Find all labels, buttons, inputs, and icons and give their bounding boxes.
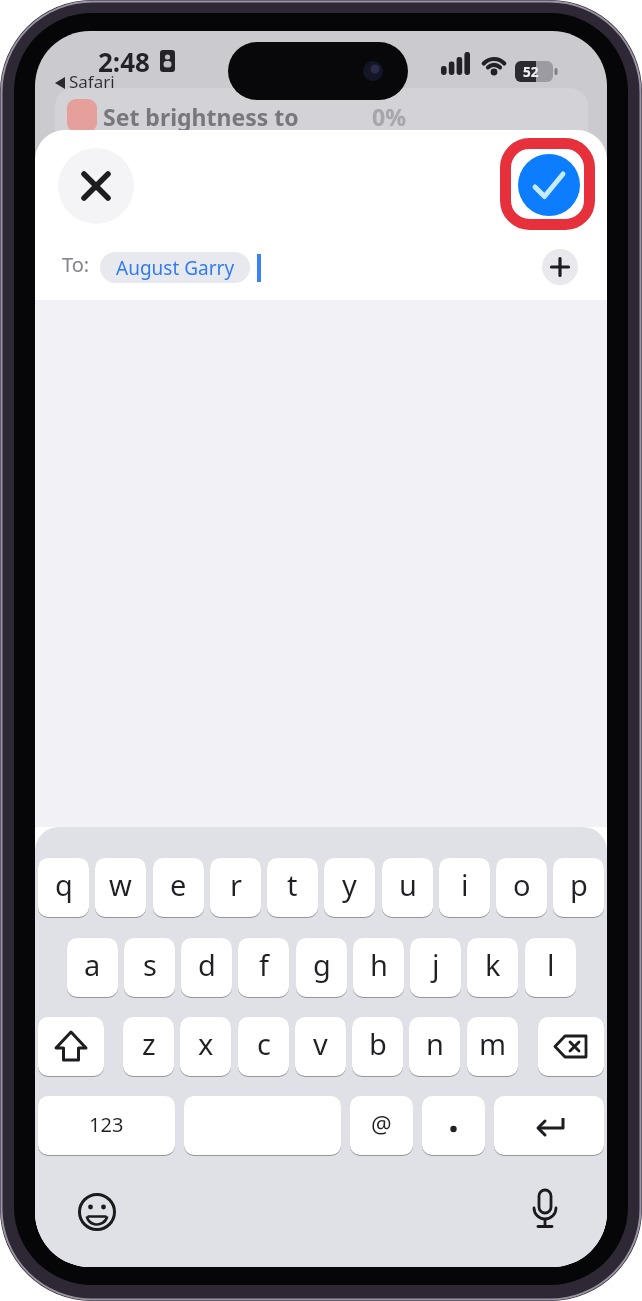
button[interactable]: @ <box>350 1096 413 1155</box>
button[interactable]: b <box>352 1017 403 1076</box>
button[interactable]: j <box>410 938 461 997</box>
button[interactable]: v <box>295 1017 346 1076</box>
staticText: r <box>230 865 242 904</box>
button[interactable]: h <box>353 938 404 997</box>
staticText: v <box>313 1024 328 1063</box>
staticText: Set brightness to <box>103 101 299 132</box>
button[interactable]: z <box>123 1017 174 1076</box>
button[interactable]: q <box>38 858 89 917</box>
button[interactable]: m <box>467 1017 518 1076</box>
button[interactable]: e <box>153 858 204 917</box>
button[interactable]: p <box>553 858 604 917</box>
button[interactable]: i <box>439 858 490 917</box>
staticText: @ <box>371 1108 392 1139</box>
staticText: o <box>513 865 531 904</box>
staticText: To: <box>62 251 90 278</box>
button[interactable]: w <box>95 858 146 917</box>
staticText: August Garry <box>116 255 235 281</box>
staticText: y <box>342 865 357 904</box>
staticText: w <box>109 865 132 904</box>
staticText: b <box>369 1024 387 1063</box>
staticText: Safari <box>69 70 115 93</box>
staticText: d <box>198 945 216 984</box>
button[interactable]: x <box>180 1017 231 1076</box>
staticText: x <box>198 1024 214 1063</box>
button[interactable]: a <box>67 938 118 997</box>
button[interactable] <box>184 1096 341 1155</box>
button[interactable]: o <box>496 858 547 917</box>
button[interactable] <box>518 154 580 216</box>
button[interactable] <box>527 1187 563 1235</box>
button[interactable] <box>38 1017 104 1076</box>
button[interactable]: d <box>181 938 232 997</box>
button[interactable] <box>494 1096 604 1155</box>
button[interactable]: g <box>296 938 347 997</box>
button[interactable]: t <box>267 858 318 917</box>
staticText: m <box>479 1024 507 1063</box>
staticText: 0% <box>372 101 406 132</box>
button[interactable] <box>538 1017 604 1076</box>
button[interactable]: r <box>210 858 261 917</box>
button[interactable] <box>77 1192 117 1232</box>
staticText: g <box>313 945 331 984</box>
button[interactable] <box>422 1096 485 1155</box>
staticText: 123 <box>89 1111 124 1138</box>
staticText: z <box>142 1024 156 1063</box>
staticText: k <box>485 945 501 984</box>
button[interactable]: y <box>324 858 375 917</box>
staticText: q <box>55 865 73 904</box>
staticText: a <box>84 945 101 984</box>
staticText: u <box>399 865 417 904</box>
staticText: 2:48 <box>98 44 150 79</box>
button[interactable]: s <box>124 938 175 997</box>
staticText: 52 <box>523 63 539 81</box>
staticText: i <box>461 865 469 904</box>
button[interactable]: 123 <box>38 1096 175 1155</box>
staticText: n <box>426 1024 444 1063</box>
staticText: t <box>287 865 298 904</box>
staticText: j <box>432 945 440 984</box>
staticText: c <box>257 1024 271 1063</box>
button[interactable]: n <box>409 1017 460 1076</box>
button[interactable]: l <box>525 938 576 997</box>
staticText: p <box>570 865 588 904</box>
staticText: l <box>547 945 555 984</box>
button[interactable] <box>542 249 578 285</box>
button[interactable]: u <box>382 858 433 917</box>
button[interactable]: k <box>467 938 518 997</box>
staticText: h <box>370 945 388 984</box>
button[interactable] <box>58 148 134 224</box>
button[interactable]: August Garry <box>100 252 250 283</box>
staticText: f <box>259 945 269 984</box>
button[interactable]: c <box>238 1017 289 1076</box>
staticText: s <box>143 945 157 984</box>
staticText: e <box>170 865 187 904</box>
button[interactable]: f <box>238 938 289 997</box>
